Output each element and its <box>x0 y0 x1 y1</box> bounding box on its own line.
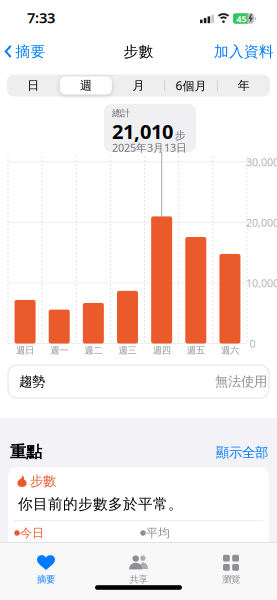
staticText: 重點 <box>10 442 42 462</box>
button[interactable]: 月 <box>112 74 165 96</box>
button[interactable]: 6個月 <box>165 74 217 96</box>
staticText: 週 <box>80 78 92 93</box>
staticText: 0 <box>249 336 255 351</box>
button[interactable]: 摘要 <box>4 33 45 69</box>
staticText: 週四 <box>153 345 171 356</box>
staticText: 10,000 <box>246 276 277 290</box>
staticText: 週二 <box>84 345 102 356</box>
button[interactable]: 瀏覽 <box>191 548 271 592</box>
staticText: 步 <box>175 129 186 142</box>
staticText: 週六 <box>221 345 239 356</box>
button[interactable]: 趨勢 <box>8 365 269 398</box>
button[interactable]: 摘要 <box>6 548 86 592</box>
staticText: 今日 <box>20 526 44 540</box>
staticText: 總計 <box>112 107 130 119</box>
staticText: 6個月 <box>176 77 207 93</box>
staticText: 週五 <box>187 345 205 356</box>
staticText: 你目前的步數多於平常。 <box>18 495 183 513</box>
staticText: 無法使用 <box>215 373 267 390</box>
staticText: 2025年3月13日 <box>112 140 187 155</box>
button[interactable]: 步數 <box>8 467 269 557</box>
staticText: 週三 <box>118 345 136 356</box>
staticText: 摘要 <box>37 574 55 585</box>
staticText: 共享 <box>129 574 147 585</box>
button[interactable]: 日 <box>7 74 60 96</box>
staticText: 20,000 <box>246 215 277 230</box>
staticText: 30,000 <box>246 155 277 169</box>
button[interactable]: 顯示全部 <box>216 444 268 461</box>
staticText: 月 <box>132 78 144 93</box>
staticText: 年 <box>238 78 250 93</box>
staticText: 平均 <box>146 526 170 540</box>
staticText: 瀏覽 <box>222 574 240 585</box>
button[interactable]: 加入資料 <box>214 33 274 69</box>
staticText: 顯示全部 <box>216 444 268 461</box>
staticText: 步數 <box>30 473 56 489</box>
staticText: 趨勢 <box>19 373 45 390</box>
staticText: 步數 <box>123 42 153 60</box>
staticText: 加入資料 <box>214 42 274 60</box>
staticText: 週一 <box>50 345 68 356</box>
staticText: 摘要 <box>15 42 45 60</box>
button[interactable]: 週 <box>60 74 112 96</box>
button[interactable]: 年 <box>217 74 270 96</box>
staticText: 21,010 <box>112 118 173 145</box>
staticText: 週日 <box>16 345 34 356</box>
staticText: 7:33 <box>27 8 55 27</box>
button[interactable]: 共享 <box>98 548 178 592</box>
staticText: 45 <box>236 12 246 25</box>
staticText: 日 <box>27 78 39 93</box>
